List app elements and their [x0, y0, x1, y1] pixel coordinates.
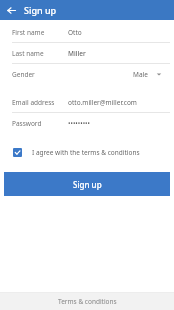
button[interactable]: First name [4, 22, 170, 42]
staticText: First name [12, 28, 68, 37]
staticText: Sign up [73, 179, 102, 190]
staticText: I agree with the terms & conditions [32, 148, 140, 157]
staticText: Password [12, 119, 68, 128]
staticText: ••••••••• [68, 119, 90, 128]
button[interactable]: Last name [4, 43, 170, 63]
staticText: Email address [12, 98, 68, 107]
staticText: Sign up [24, 4, 57, 16]
staticText: Terms & conditions [58, 297, 117, 306]
button[interactable]: Sign up [4, 172, 170, 196]
staticText: Miller [68, 49, 86, 58]
button[interactable]: Terms & conditions [0, 293, 174, 310]
staticText: Male [133, 70, 148, 79]
button[interactable]: Email address [4, 92, 170, 112]
staticText: otto.miller@miller.com [68, 98, 137, 107]
staticText: Gender [12, 70, 133, 79]
button[interactable]: I agree with the terms & conditions [4, 141, 170, 163]
button[interactable]: Gender [4, 64, 170, 84]
button[interactable]: Password [4, 113, 170, 133]
button[interactable]: Back [5, 4, 18, 17]
staticText: Otto [68, 28, 82, 37]
staticText: Last name [12, 49, 68, 58]
